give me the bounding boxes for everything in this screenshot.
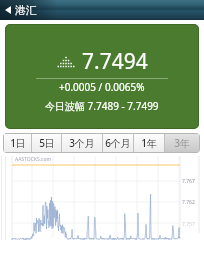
staticText: +0.0005 / 0.0065%	[59, 80, 145, 94]
button[interactable]: Back	[0, 0, 48, 20]
staticText: 7.762	[182, 199, 195, 206]
button[interactable]: 1日	[4, 134, 31, 152]
staticText: 7.7494	[82, 47, 148, 76]
staticText: AASTOCKS.com	[15, 156, 52, 163]
button[interactable]: 1年	[134, 134, 164, 152]
staticText: 3个月	[69, 136, 95, 150]
button[interactable]: 3个月	[62, 134, 102, 152]
button[interactable]: 5日	[32, 134, 61, 152]
staticText: 7.757	[182, 221, 195, 228]
button[interactable]: 6个月	[103, 134, 133, 152]
staticText: 6个月	[105, 136, 131, 150]
staticText: 今日波幅 7.7489 - 7.7499	[45, 99, 159, 113]
staticText: 3年	[174, 136, 190, 150]
staticText: 1年	[141, 136, 157, 150]
staticText: 港汇	[15, 3, 37, 17]
button[interactable]: AASTOCKS.com	[0, 156, 204, 269]
staticText: 5日	[39, 136, 55, 150]
staticText: 1日	[10, 136, 26, 150]
button[interactable]: 3年	[165, 134, 199, 152]
staticText: 7.767	[182, 178, 195, 185]
button[interactable]: 7.7494	[5, 24, 199, 129]
